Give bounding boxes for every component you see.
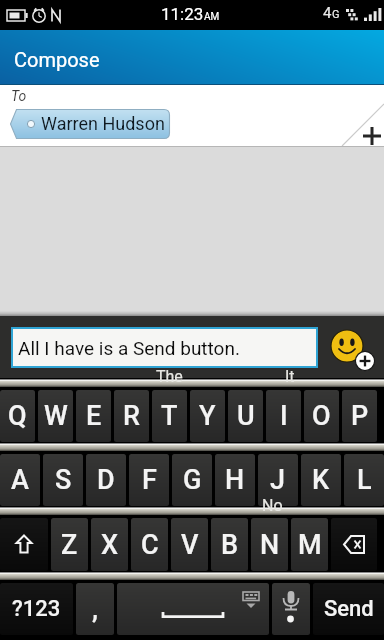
staticText: The — [156, 367, 183, 386]
button[interactable]: A — [0, 454, 40, 506]
button[interactable]: M — [291, 518, 328, 571]
staticText: O — [312, 400, 331, 432]
button[interactable]: R — [114, 390, 149, 442]
button[interactable]: T — [152, 390, 187, 442]
button[interactable]: O — [304, 390, 339, 442]
staticText: S — [55, 464, 72, 496]
button[interactable]: Send — [313, 583, 384, 635]
button[interactable]: Compose — [0, 30, 384, 85]
staticText: F — [142, 464, 157, 496]
staticText: U — [237, 400, 255, 432]
staticText: V — [181, 529, 199, 561]
staticText: T — [161, 400, 178, 432]
staticText: W — [44, 400, 68, 432]
button[interactable]: F — [129, 454, 169, 506]
button[interactable]: Shift — [0, 518, 48, 571]
button[interactable]: S — [43, 454, 83, 506]
button[interactable]: I — [266, 390, 301, 442]
button[interactable]: U — [228, 390, 263, 442]
staticText: , — [92, 593, 99, 625]
button[interactable]: N — [251, 518, 288, 571]
button[interactable]: Backspace — [331, 518, 377, 571]
staticText: I — [280, 400, 288, 432]
button[interactable]: G — [172, 454, 212, 506]
button[interactable]: Insert emoji — [325, 328, 377, 372]
button[interactable]: V — [171, 518, 208, 571]
button[interactable]: D — [86, 454, 126, 506]
staticText: D — [97, 464, 115, 496]
staticText: P — [351, 400, 369, 432]
button[interactable]: ?123 — [0, 583, 73, 635]
staticText: Y — [199, 400, 216, 432]
button[interactable]: , — [76, 583, 114, 635]
staticText: 4 — [323, 4, 332, 22]
staticText: J — [270, 464, 286, 496]
staticText: M — [298, 529, 322, 561]
staticText: E — [86, 400, 102, 432]
staticText: C — [141, 529, 159, 561]
staticText: R — [123, 400, 140, 432]
staticText: L — [357, 464, 372, 496]
button[interactable]: Add recipient — [342, 104, 384, 146]
staticText: Q — [8, 400, 27, 432]
button[interactable]: J — [258, 454, 298, 506]
staticText: H — [225, 464, 245, 496]
staticText: K — [312, 464, 330, 496]
staticText: N — [260, 529, 280, 561]
staticText: 11:23 — [161, 4, 204, 24]
staticText: To — [11, 88, 27, 104]
staticText: A — [11, 464, 29, 496]
staticText: Z — [61, 529, 78, 561]
staticText: G — [183, 464, 202, 496]
button[interactable]: P — [342, 390, 377, 442]
button[interactable]: All I have is a Send button. — [13, 329, 316, 366]
button[interactable]: Warren Hudson — [10, 109, 170, 139]
button[interactable]: Voice input — [272, 583, 310, 635]
staticText: X — [101, 529, 119, 561]
button[interactable]: H — [215, 454, 255, 506]
staticText: ?123 — [12, 596, 61, 622]
button[interactable]: C — [131, 518, 168, 571]
button[interactable]: W — [38, 390, 73, 442]
button[interactable]: Space — [117, 583, 269, 635]
staticText: Compose — [14, 48, 100, 71]
staticText: No — [262, 496, 283, 515]
button[interactable]: B — [211, 518, 248, 571]
staticText: B — [221, 529, 239, 561]
button[interactable]: L — [344, 454, 384, 506]
staticText: All I have is a Send button. — [18, 337, 240, 359]
staticText: Warren Hudson — [41, 113, 165, 134]
staticText: G — [332, 8, 340, 21]
button[interactable]: Q — [0, 390, 35, 442]
button[interactable]: K — [301, 454, 341, 506]
button[interactable]: Y — [190, 390, 225, 442]
staticText: Send — [324, 596, 374, 622]
button[interactable]: E — [76, 390, 111, 442]
staticText: It — [285, 367, 295, 386]
button[interactable]: X — [91, 518, 128, 571]
button[interactable]: Z — [51, 518, 88, 571]
staticText: AM — [204, 11, 220, 23]
